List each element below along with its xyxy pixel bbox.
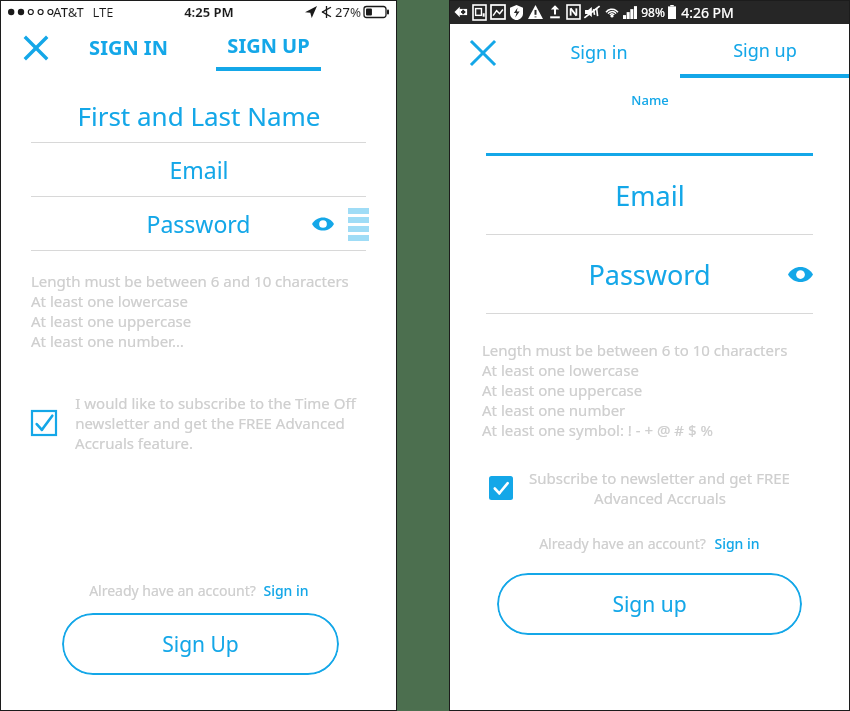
button[interactable]: Sign up — [497, 573, 802, 635]
button[interactable]: Sign Up — [62, 613, 339, 675]
button[interactable]: Close — [12, 24, 60, 71]
staticText: First and Last Name — [77, 98, 321, 133]
staticText: LTE — [92, 3, 114, 21]
button[interactable]: Show password — [782, 256, 818, 292]
staticText: Email — [615, 177, 685, 214]
staticText: At least one lowercase — [482, 360, 639, 380]
staticText: Subscribe to newsletter and get FREE — [529, 468, 790, 488]
staticText: Sign Up — [162, 630, 239, 659]
staticText: Sign in — [714, 534, 760, 553]
button[interactable]: Sign up — [680, 24, 850, 78]
staticText: At least one number… — [31, 331, 184, 351]
staticText: 4:26 PM — [681, 3, 734, 22]
staticText: 4:25 PM — [184, 3, 234, 21]
staticText: At least one uppercase — [482, 380, 643, 400]
staticText: At least one uppercase — [31, 311, 192, 331]
button[interactable]: SIGN UP — [207, 24, 330, 71]
staticText: Name — [631, 91, 669, 109]
staticText: Password — [146, 208, 251, 239]
button[interactable]: Show password — [306, 207, 340, 241]
staticText: Sign up — [733, 38, 797, 63]
staticText: 98% — [641, 4, 665, 20]
staticText: Sign in — [570, 40, 628, 65]
staticText: At least one number — [482, 400, 626, 420]
staticText: Already have an account? — [539, 534, 706, 553]
staticText: SIGN UP — [227, 32, 310, 59]
staticText: SIGN IN — [89, 34, 168, 61]
staticText: Password — [588, 256, 711, 293]
button[interactable]: Email — [0, 143, 397, 196]
button[interactable]: Email — [449, 156, 850, 234]
button[interactable]: Subscribe to newsletter and get FREE — [449, 468, 850, 508]
staticText: Length must be between 6 to 10 character… — [482, 340, 788, 360]
button[interactable]: Name — [449, 91, 850, 153]
button[interactable]: Sign in — [263, 581, 309, 600]
staticText: newsletter and get the FREE Advanced — [75, 413, 345, 433]
staticText: At least one lowercase — [31, 291, 188, 311]
button[interactable]: First and Last Name — [0, 89, 397, 142]
button[interactable]: Close — [457, 27, 509, 79]
button[interactable]: Password — [449, 235, 850, 313]
staticText: 27% — [335, 3, 361, 21]
staticText: Length must be between 6 and 10 characte… — [31, 271, 349, 291]
button[interactable]: Sign in — [714, 534, 760, 553]
staticText: Email — [169, 154, 229, 185]
button[interactable]: SIGN IN — [73, 24, 183, 71]
staticText: Advanced Accruals — [594, 488, 726, 508]
staticText: I would like to subscribe to the Time Of… — [75, 393, 356, 413]
button[interactable]: Password — [0, 197, 397, 250]
staticText: Accruals feature. — [75, 433, 193, 453]
button[interactable]: Sign in — [544, 24, 654, 81]
staticText: Already have an account? — [89, 581, 256, 600]
staticText: Sign up — [612, 590, 687, 619]
button[interactable]: I would like to subscribe to the Time Of… — [0, 393, 397, 453]
staticText: AT&T — [53, 3, 84, 21]
staticText: Sign in — [263, 581, 309, 600]
staticText: At least one symbol: ! - + @ # $ % — [482, 420, 713, 440]
